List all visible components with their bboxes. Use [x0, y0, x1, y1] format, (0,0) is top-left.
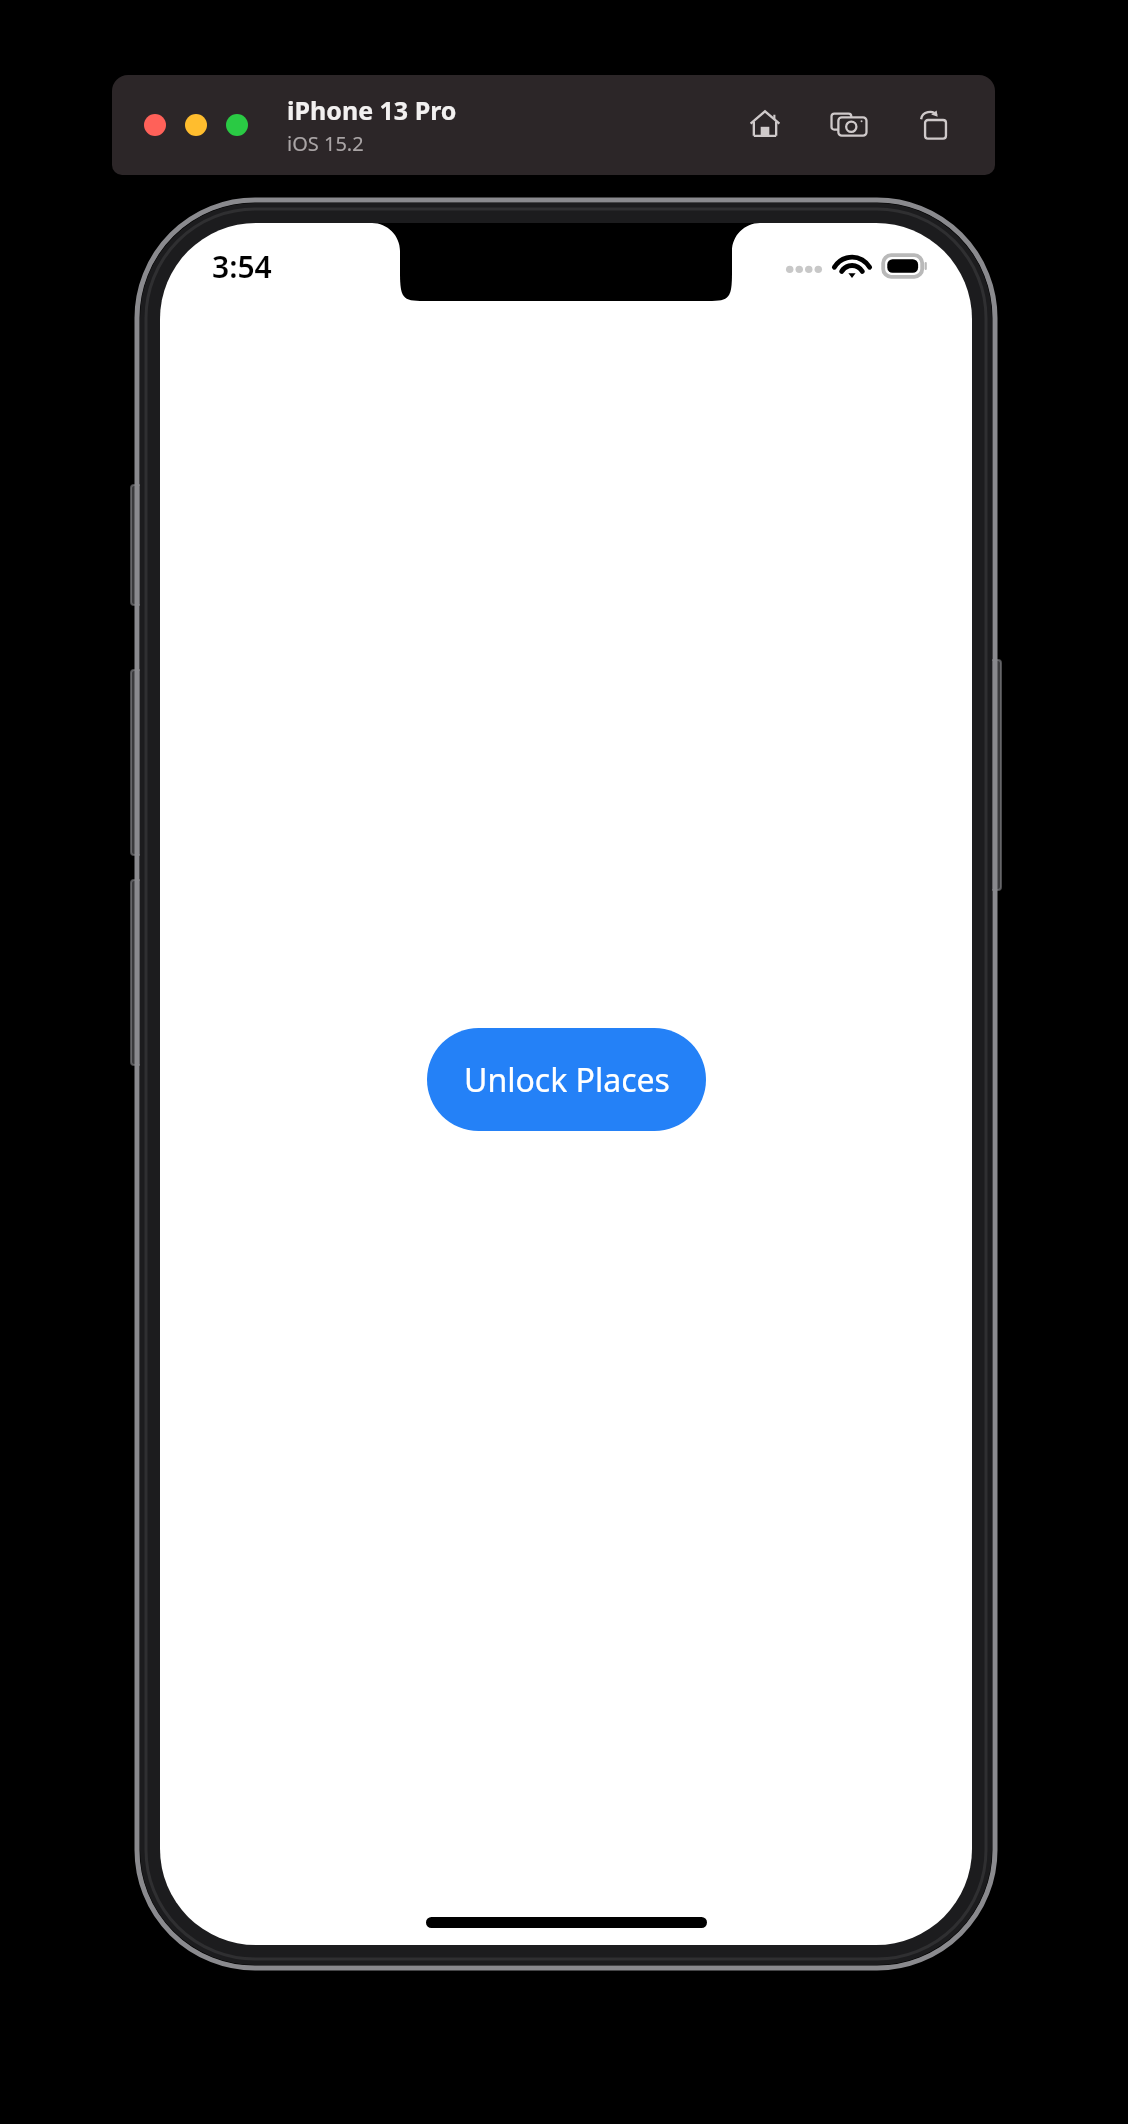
button[interactable]: [185, 114, 207, 136]
button[interactable]: [144, 114, 166, 136]
staticText: 3:54: [212, 246, 272, 287]
button[interactable]: Rotate: [911, 103, 955, 147]
staticText: iOS 15.2: [287, 130, 364, 157]
button[interactable]: [226, 114, 248, 136]
button[interactable]: Screenshot: [827, 103, 871, 147]
staticText: Unlock Places: [464, 1058, 670, 1102]
button[interactable]: Home: [743, 103, 787, 147]
button[interactable]: Unlock Places: [427, 1028, 706, 1131]
staticText: iPhone 13 Pro: [287, 93, 457, 127]
